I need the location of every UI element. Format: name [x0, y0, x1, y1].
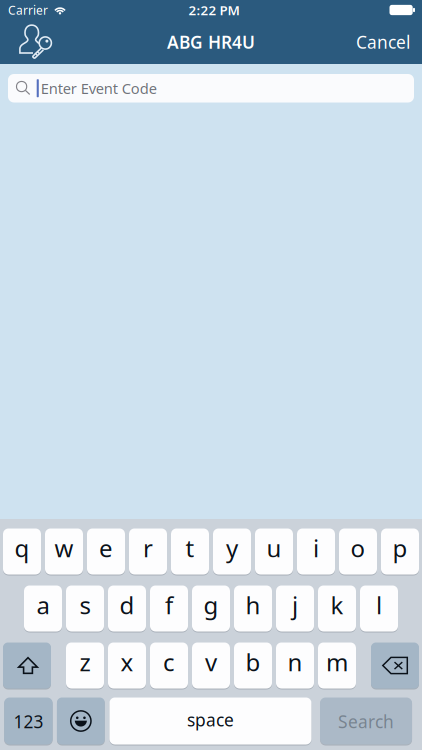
button[interactable]: o — [339, 528, 377, 574]
button[interactable]: Cancel — [344, 20, 422, 64]
staticText: s — [79, 589, 90, 621]
button[interactable]: i — [297, 528, 335, 574]
button[interactable]: s — [66, 585, 104, 631]
staticText: e — [99, 532, 113, 564]
button[interactable]: Emoji — [57, 697, 105, 744]
button[interactable]: l — [360, 585, 398, 631]
button[interactable]: f — [150, 585, 188, 631]
button[interactable]: Search — [8, 74, 414, 102]
staticText: p — [392, 532, 407, 564]
staticText: Cancel — [356, 30, 410, 53]
button[interactable]: v — [192, 642, 230, 688]
button[interactable]: m — [318, 642, 356, 688]
staticText: x — [120, 646, 133, 678]
button[interactable]: h — [234, 585, 272, 631]
button[interactable]: d — [108, 585, 146, 631]
staticText: ABG HR4U — [167, 30, 255, 53]
button[interactable]: u — [255, 528, 293, 574]
staticText: n — [287, 646, 302, 678]
staticText: t — [185, 532, 194, 564]
staticText: l — [376, 589, 382, 621]
button[interactable]: n — [276, 642, 314, 688]
button[interactable]: Shift — [3, 642, 51, 688]
staticText: i — [313, 532, 319, 564]
staticText: m — [326, 646, 348, 678]
button[interactable]: k — [318, 585, 356, 631]
staticText: g — [203, 589, 218, 621]
staticText: a — [36, 589, 49, 621]
button[interactable]: r — [129, 528, 167, 574]
staticText: q — [14, 532, 29, 564]
button[interactable]: y — [213, 528, 251, 574]
staticText: 2:22 PM — [188, 1, 239, 19]
button[interactable]: x — [108, 642, 146, 688]
staticText: w — [54, 532, 73, 564]
staticText: k — [330, 589, 343, 621]
button[interactable]: t — [171, 528, 209, 574]
staticText: d — [119, 589, 134, 621]
staticText: r — [143, 532, 153, 564]
button[interactable]: j — [276, 585, 314, 631]
staticText: h — [245, 589, 260, 621]
staticText: o — [350, 532, 365, 564]
staticText: f — [165, 589, 173, 621]
button[interactable]: 123 — [4, 697, 53, 744]
button[interactable]: z — [66, 642, 104, 688]
staticText: c — [163, 646, 175, 678]
staticText: v — [205, 646, 217, 678]
staticText: Search — [338, 710, 394, 733]
staticText: u — [266, 532, 281, 564]
button[interactable]: space — [109, 697, 311, 744]
button[interactable]: p — [381, 528, 419, 574]
button[interactable]: c — [150, 642, 188, 688]
staticText: j — [292, 589, 298, 621]
button[interactable]: b — [234, 642, 272, 688]
staticText: z — [79, 646, 90, 678]
staticText: Enter Event Code — [41, 78, 157, 98]
button[interactable]: Search — [320, 697, 412, 744]
staticText: 123 — [13, 710, 43, 733]
button[interactable]: Delete — [371, 642, 419, 688]
button[interactable]: q — [3, 528, 41, 574]
button[interactable]: g — [192, 585, 230, 631]
button[interactable]: Account — [0, 20, 65, 64]
button[interactable]: w — [45, 528, 83, 574]
button[interactable]: a — [24, 585, 62, 631]
staticText: Carrier — [8, 2, 48, 18]
button[interactable]: e — [87, 528, 125, 574]
staticText: space — [187, 708, 234, 731]
staticText: y — [226, 532, 238, 564]
staticText: b — [245, 646, 260, 678]
